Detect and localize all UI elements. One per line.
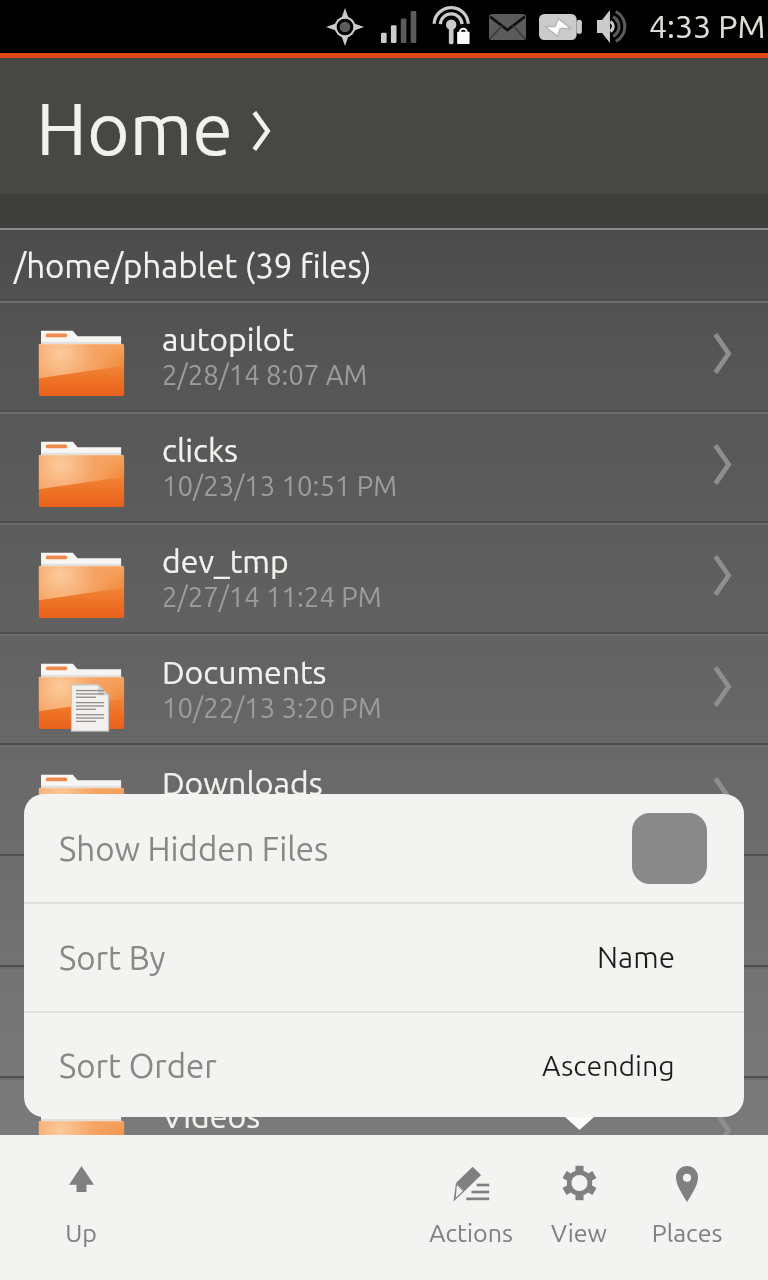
- staticText: Documents: [162, 654, 327, 690]
- staticText: clicks: [162, 432, 238, 468]
- staticText: Pictures: [162, 987, 279, 1023]
- button[interactable]: Home: [0, 59, 768, 194]
- staticText: dev_tmp: [162, 543, 289, 579]
- staticText: Up: [27, 1219, 135, 1247]
- staticText: Actions: [417, 1219, 525, 1247]
- staticText: Show Hidden Files: [59, 830, 329, 867]
- button[interactable]: Sort Order: [24, 1013, 744, 1117]
- button[interactable]: View: [525, 1135, 633, 1280]
- button[interactable]: Documents: [0, 635, 768, 743]
- button[interactable]: dev_tmp: [0, 524, 768, 632]
- button[interactable]: Downloads: [0, 746, 768, 854]
- button[interactable]: Show Hidden Files: [24, 794, 744, 902]
- staticText: Music: [162, 876, 245, 912]
- button[interactable]: Up: [27, 1135, 135, 1280]
- staticText: Places: [633, 1219, 741, 1247]
- staticText: Downloads: [162, 765, 323, 801]
- staticText: 2/28/14 8:07 AM: [162, 359, 368, 390]
- staticText: Name: [597, 941, 675, 974]
- staticText: /home/phablet (39 files): [14, 247, 372, 284]
- staticText: 10/22/13 3:20 PM: [162, 1025, 382, 1056]
- button[interactable]: clicks: [0, 413, 768, 521]
- staticText: 2/27/14 11:24 PM: [162, 581, 382, 612]
- staticText: View: [525, 1219, 633, 1247]
- staticText: 10/22/13 3:20 PM: [162, 692, 382, 723]
- staticText: autopilot: [162, 321, 295, 357]
- button[interactable]: Videos: [0, 1079, 768, 1187]
- button[interactable]: autopilot: [0, 302, 768, 410]
- button[interactable]: Pictures: [0, 968, 768, 1076]
- button[interactable]: Places: [633, 1135, 741, 1280]
- staticText: Home: [36, 87, 233, 169]
- staticText: Videos: [162, 1098, 261, 1134]
- button[interactable]: Actions: [417, 1135, 525, 1280]
- button[interactable]: Music: [0, 857, 768, 965]
- staticText: Sort Order: [59, 1047, 217, 1084]
- button[interactable]: Sort By: [24, 904, 744, 1011]
- staticText: 10/23/13 10:51 PM: [162, 470, 398, 501]
- staticText: Sort By: [59, 939, 166, 976]
- staticText: Ascending: [542, 1049, 675, 1081]
- staticText: 4:33 PM: [649, 8, 766, 44]
